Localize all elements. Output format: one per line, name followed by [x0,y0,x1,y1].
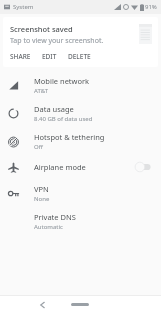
staticText: System [13,3,34,11]
button[interactable]: DELETE [67,51,92,62]
staticText: Off [34,143,43,151]
button[interactable]: Home [58,295,102,314]
staticText: None [34,195,50,203]
staticText: 8.40 GB of data used [34,115,93,123]
staticText: Private DNS [34,212,76,222]
staticText: AT&T [34,87,48,95]
staticText: EDIT [42,52,57,61]
staticText: Automatic [34,223,63,231]
staticText: SHARE [10,52,31,61]
button[interactable]: EDIT [41,51,58,62]
staticText: Hotspot & tethering [34,132,105,142]
button[interactable]: Mobile network [0,71,161,99]
staticText: Data usage [34,104,74,114]
button[interactable]: Airplane mode toggle [133,161,153,173]
button[interactable]: Screenshot saved [3,17,158,67]
button[interactable]: SHARE [9,51,32,62]
staticText: Tap to view your screenshot. [10,36,104,46]
staticText: VPN [34,184,49,194]
staticText: Airplane mode [34,162,86,172]
staticText: Mobile network [34,76,90,86]
staticText: Screenshot saved [10,24,73,34]
button[interactable]: Back [22,295,62,314]
button[interactable]: Hotspot & tethering [0,127,161,155]
staticText: DELETE [68,52,91,61]
staticText: 91% [145,3,157,11]
button[interactable]: Data usage [0,99,161,127]
button[interactable]: Airplane mode [0,155,161,179]
button[interactable]: Private DNS [0,207,161,235]
button[interactable]: VPN [0,179,161,207]
